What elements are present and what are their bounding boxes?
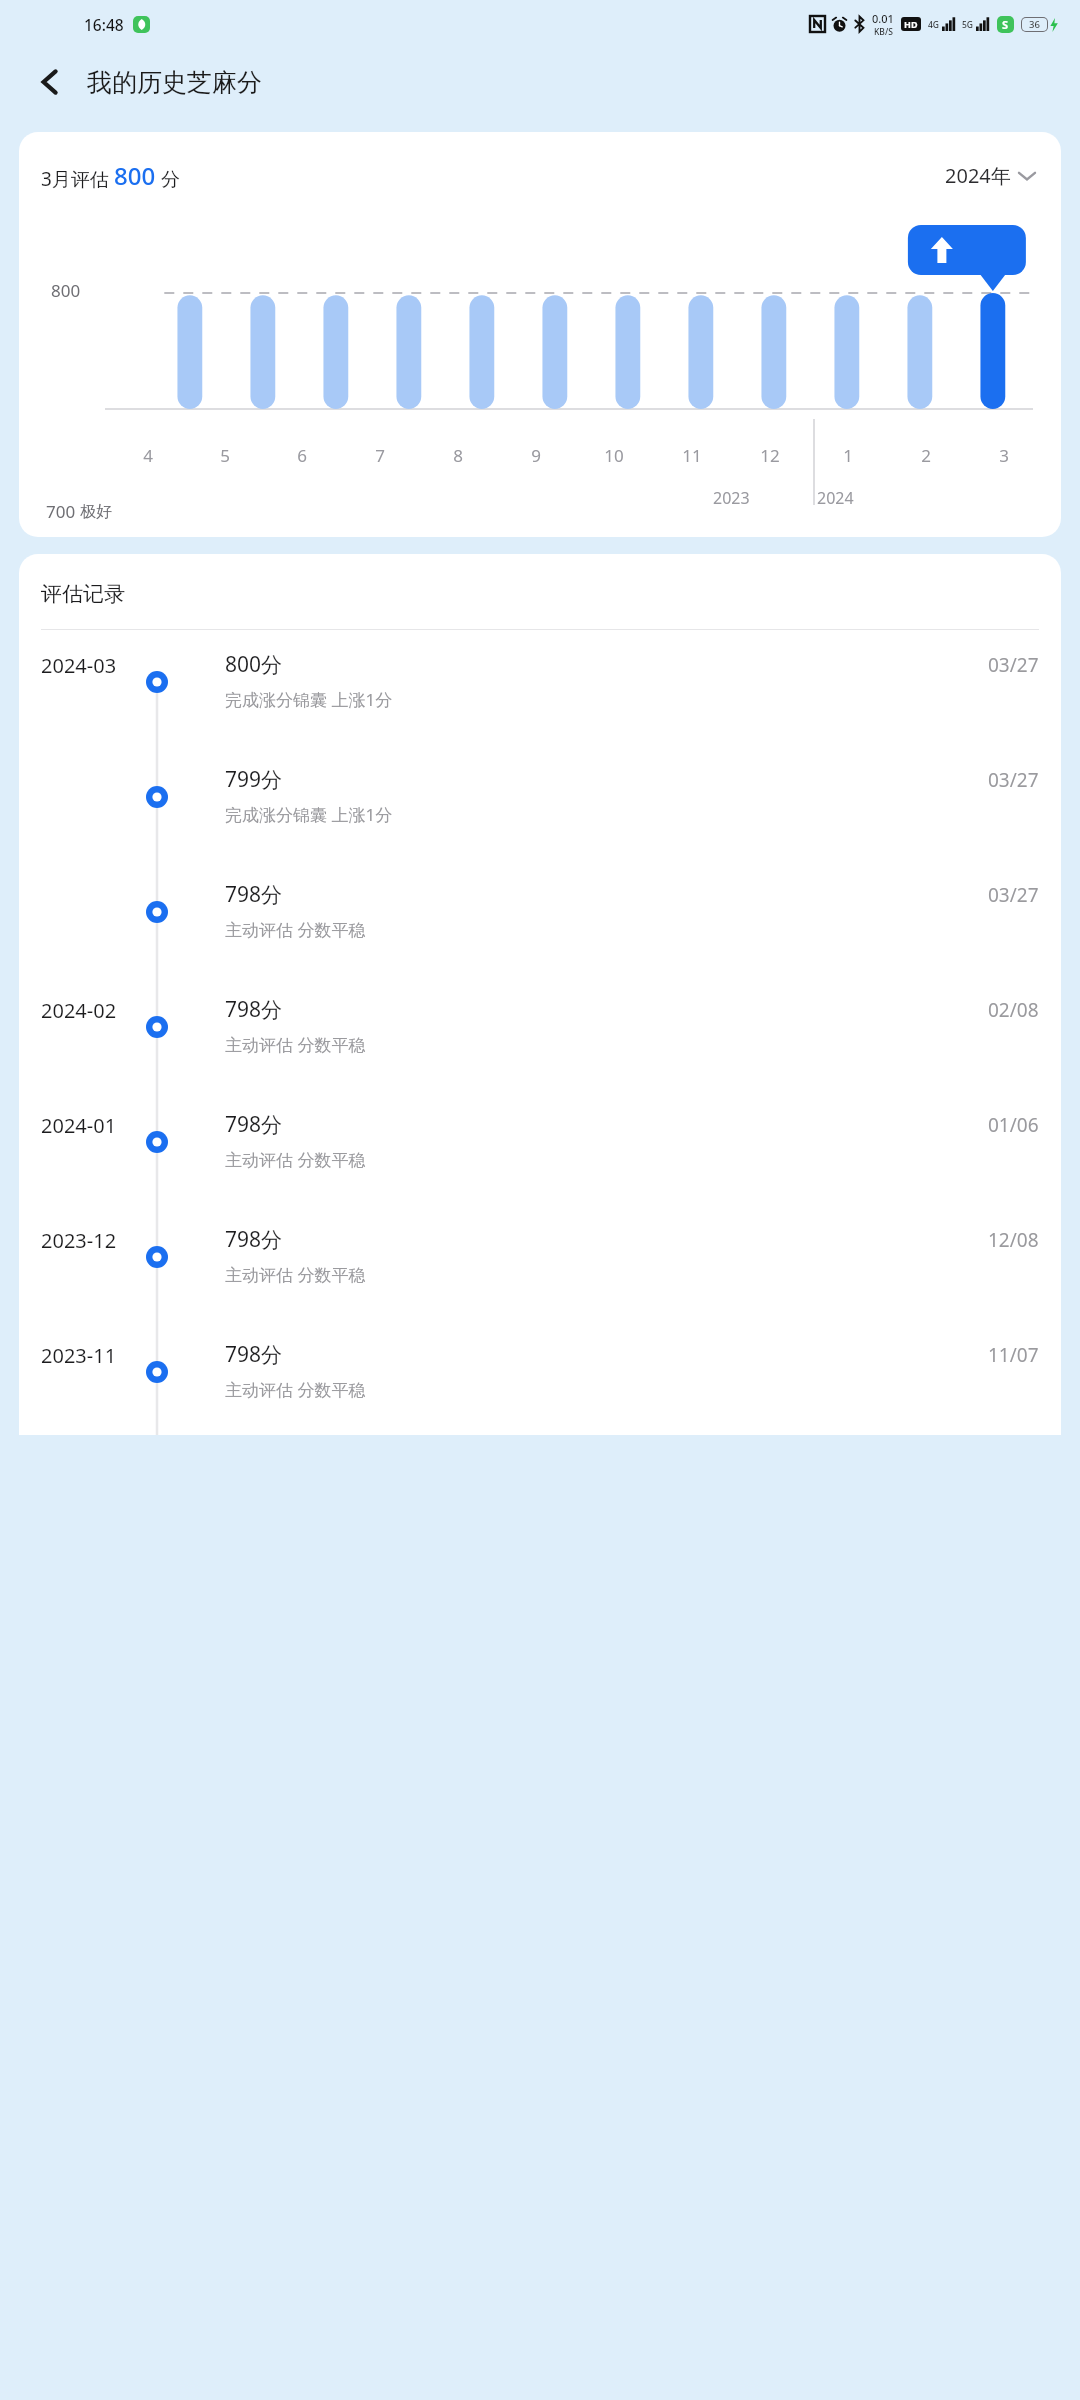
staticText: 7: [375, 444, 385, 467]
button[interactable]: Back: [26, 58, 74, 106]
staticText: 4: [143, 444, 153, 467]
staticText: 主动评估 分数平稳: [225, 1033, 366, 1056]
staticText: 主动评估 分数平稳: [225, 1148, 366, 1171]
staticText: 9: [531, 444, 541, 467]
staticText: 2024-01: [41, 1112, 117, 1139]
staticText: 798分: [225, 1110, 283, 1139]
staticText: 03/27: [988, 882, 1039, 908]
button[interactable]: 2024-01: [19, 1090, 1061, 1205]
staticText: 03/27: [988, 767, 1039, 793]
staticText: 800: [51, 279, 81, 302]
button[interactable]: 2024年: [941, 158, 1039, 193]
staticText: 799分: [225, 765, 283, 794]
staticText: KB/S: [874, 26, 893, 38]
staticText: 798分: [225, 995, 283, 1024]
button[interactable]: 798分: [19, 860, 1061, 975]
staticText: 主动评估 分数平稳: [225, 918, 366, 941]
staticText: 798分: [225, 880, 283, 909]
button[interactable]: 2023-11: [19, 1320, 1061, 1435]
staticText: 1: [843, 444, 853, 467]
staticText: 12: [760, 444, 780, 467]
staticText: 2: [921, 444, 931, 467]
staticText: 我的历史芝麻分: [87, 67, 262, 98]
staticText: 6: [297, 444, 307, 467]
staticText: 11: [682, 444, 702, 467]
staticText: HD: [904, 18, 918, 30]
staticText: 主动评估 分数平稳: [225, 1263, 366, 1286]
staticText: 798分: [225, 1340, 283, 1369]
staticText: 800: [114, 159, 156, 192]
staticText: 0.01: [872, 11, 894, 26]
button[interactable]: 2024-03: [19, 630, 1061, 745]
staticText: 36: [1029, 18, 1040, 31]
staticText: 2024-03: [41, 652, 117, 679]
staticText: 完成涨分锦囊 上涨1分: [225, 688, 393, 711]
staticText: 11/07: [988, 1342, 1039, 1368]
staticText: 2024: [817, 487, 854, 509]
staticText: 800分: [225, 650, 283, 679]
staticText: 评估记录: [41, 581, 125, 607]
button[interactable]: 2024-02: [19, 975, 1061, 1090]
staticText: 3: [999, 444, 1009, 467]
staticText: 03/27: [988, 652, 1039, 678]
staticText: 3月评估: [41, 166, 114, 192]
staticText: 主动评估 分数平稳: [225, 1378, 366, 1401]
staticText: 8: [453, 444, 463, 467]
staticText: 02/08: [988, 997, 1039, 1023]
staticText: 极好: [80, 502, 112, 522]
staticText: 2023-11: [41, 1342, 117, 1369]
button[interactable]: 799分: [19, 745, 1061, 860]
button[interactable]: 2023-12: [19, 1205, 1061, 1320]
staticText: 12/08: [988, 1227, 1039, 1253]
staticText: 700: [46, 500, 80, 523]
staticText: 2023: [713, 487, 750, 509]
staticText: 01/06: [988, 1112, 1039, 1138]
staticText: 2024-02: [41, 997, 117, 1024]
staticText: 798分: [225, 1225, 283, 1254]
staticText: 2024年: [945, 162, 1011, 189]
staticText: 分: [156, 166, 180, 192]
staticText: 完成涨分锦囊 上涨1分: [225, 803, 393, 826]
staticText: 16:48: [84, 14, 124, 35]
staticText: 5: [220, 444, 230, 467]
staticText: 4G: [928, 19, 940, 31]
staticText: 2023-12: [41, 1227, 117, 1254]
staticText: 10: [604, 444, 624, 467]
staticText: 5G: [962, 19, 974, 31]
staticText: S: [1002, 17, 1009, 32]
